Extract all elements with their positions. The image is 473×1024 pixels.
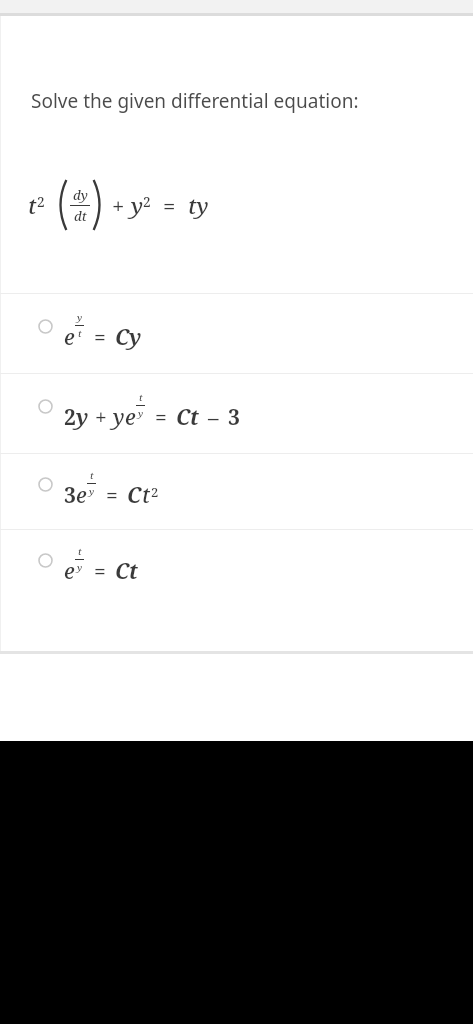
staticText: 2: [64, 403, 76, 432]
staticText: t: [78, 545, 82, 558]
staticText: =: [163, 190, 176, 220]
staticText: y: [131, 190, 143, 220]
staticText: t: [90, 469, 94, 482]
staticText: Ct: [176, 403, 199, 432]
staticText: t: [28, 190, 37, 220]
staticText: Cy: [115, 323, 142, 352]
staticText: =: [94, 323, 106, 352]
staticText: =: [94, 557, 106, 586]
staticText: y: [77, 561, 83, 574]
staticText: y: [76, 403, 89, 432]
staticText: t: [142, 481, 151, 510]
staticText: t: [139, 391, 143, 404]
staticText: =: [106, 481, 118, 510]
staticText: 2: [37, 192, 45, 211]
button[interactable]: 2: [0, 373, 473, 453]
staticText: +: [95, 403, 107, 432]
staticText: e: [76, 481, 87, 510]
staticText: e: [125, 403, 136, 432]
staticText: e: [64, 557, 75, 586]
button[interactable]: e: [0, 529, 473, 605]
staticText: y: [77, 311, 83, 324]
staticText: y: [89, 485, 95, 498]
staticText: 2: [143, 192, 151, 211]
staticText: C: [127, 481, 142, 510]
button[interactable]: e: [0, 293, 473, 373]
staticText: dt: [74, 207, 87, 225]
staticText: dy: [73, 186, 88, 204]
staticText: ty: [188, 190, 209, 220]
staticText: e: [64, 323, 75, 352]
staticText: 3: [64, 481, 76, 510]
staticText: y: [113, 403, 125, 432]
button[interactable]: 3: [0, 453, 473, 529]
staticText: +: [112, 190, 125, 220]
staticText: Ct: [115, 557, 138, 586]
staticText: 3: [228, 403, 240, 432]
staticText: 2: [151, 483, 159, 501]
staticText: –: [208, 403, 219, 432]
staticText: Solve the given differential equation:: [31, 88, 359, 114]
staticText: t: [78, 327, 82, 340]
staticText: =: [155, 403, 167, 432]
staticText: y: [138, 407, 144, 420]
